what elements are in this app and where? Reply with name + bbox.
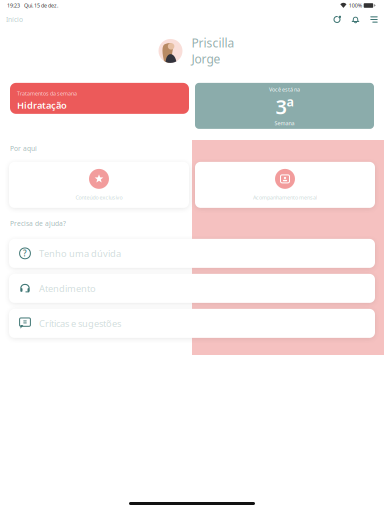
staticText: Críticas e sugestões bbox=[39, 317, 121, 330]
button[interactable]: Atendimento bbox=[9, 274, 375, 303]
staticText: Conteúdo exclusivo bbox=[75, 194, 122, 201]
button[interactable]: Notificações bbox=[348, 12, 362, 26]
staticText: Atendimento bbox=[39, 282, 96, 295]
button[interactable]: Priscilla Jorge bbox=[149, 35, 234, 67]
button[interactable]: Menu bbox=[367, 12, 381, 26]
staticText: Hidratação bbox=[17, 99, 67, 111]
staticText: 100% bbox=[349, 2, 362, 9]
staticText: Início bbox=[6, 15, 23, 24]
staticText: ? bbox=[23, 248, 27, 259]
button[interactable]: Atualizar bbox=[330, 12, 344, 26]
button[interactable]: Tratamentos da semana bbox=[10, 83, 189, 114]
staticText: Acompanhamento mensal bbox=[253, 194, 317, 201]
staticText: Qui. 15 de dez. bbox=[24, 2, 58, 9]
staticText: Precisa de ajuda? bbox=[10, 219, 66, 228]
staticText: Semana bbox=[274, 120, 294, 127]
staticText: Por aqui bbox=[10, 144, 37, 153]
staticText: Você está na bbox=[269, 86, 300, 93]
button[interactable]: Acompanhamento mensal bbox=[195, 162, 375, 208]
staticText: 3ª bbox=[275, 93, 293, 120]
staticText: Tenho uma dúvida bbox=[39, 247, 121, 260]
button[interactable]: Conteúdo exclusivo bbox=[9, 162, 189, 208]
staticText: Tratamentos da semana bbox=[17, 90, 77, 97]
staticText: 19:23 bbox=[7, 2, 20, 9]
button[interactable]: ? bbox=[9, 239, 375, 268]
button[interactable]: Você está na bbox=[195, 83, 374, 129]
staticText: Priscilla Jorge bbox=[191, 35, 234, 67]
button[interactable]: Críticas e sugestões bbox=[9, 309, 375, 338]
